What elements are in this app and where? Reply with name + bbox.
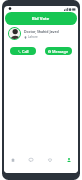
button[interactable]: Profile <box>59 157 78 173</box>
button[interactable]: Home <box>4 157 22 173</box>
staticText: Message <box>52 49 69 54</box>
staticText: Doctor, Shahid Javed <box>24 29 59 34</box>
button[interactable]: Message <box>45 47 72 55</box>
button[interactable]: Chat <box>22 157 40 173</box>
button[interactable]: Favourites <box>40 157 59 173</box>
staticText: Call <box>22 49 29 54</box>
staticText: Lahore <box>28 35 38 39</box>
button[interactable]: Call <box>10 47 36 55</box>
staticText: Bid Vote <box>32 16 50 22</box>
